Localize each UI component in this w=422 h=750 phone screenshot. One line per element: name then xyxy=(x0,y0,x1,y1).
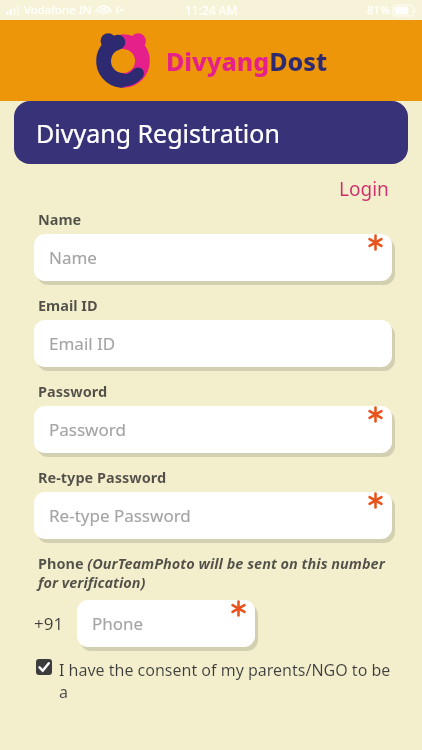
staticText: Login xyxy=(339,176,389,202)
staticText: Re-type Password xyxy=(49,504,191,527)
staticText: Phone xyxy=(92,612,144,635)
staticText: Name xyxy=(38,209,82,229)
button[interactable]: Password xyxy=(34,406,392,453)
staticText: Password xyxy=(38,381,108,401)
staticText: I have the consent of my parents/NGO to … xyxy=(59,659,402,703)
button[interactable]: Divyang Registration xyxy=(14,101,408,164)
button[interactable]: Login xyxy=(0,176,389,202)
staticText: Email ID xyxy=(38,295,98,315)
other: Consent checkbox xyxy=(36,659,52,675)
staticText: DivyangDost xyxy=(166,44,328,78)
button[interactable]: Name xyxy=(34,234,392,281)
button[interactable]: Phone xyxy=(77,600,255,647)
button[interactable]: Re-type Password xyxy=(34,492,392,539)
staticText: Password xyxy=(49,418,126,441)
staticText: Name xyxy=(49,246,97,269)
staticText: +91 xyxy=(34,612,64,635)
staticText: Vodafone IN xyxy=(24,2,92,18)
staticText: 11:24 AM xyxy=(185,2,238,18)
button[interactable]: Consent checkbox xyxy=(36,659,402,703)
staticText: Divyang Registration xyxy=(36,116,280,150)
staticText: 81% xyxy=(367,2,390,18)
button[interactable]: Email ID xyxy=(34,320,392,367)
staticText: Re-type Password xyxy=(38,467,167,487)
staticText: Phone (OurTeamPhoto will be sent on this… xyxy=(38,553,392,592)
staticText: Email ID xyxy=(49,332,116,355)
